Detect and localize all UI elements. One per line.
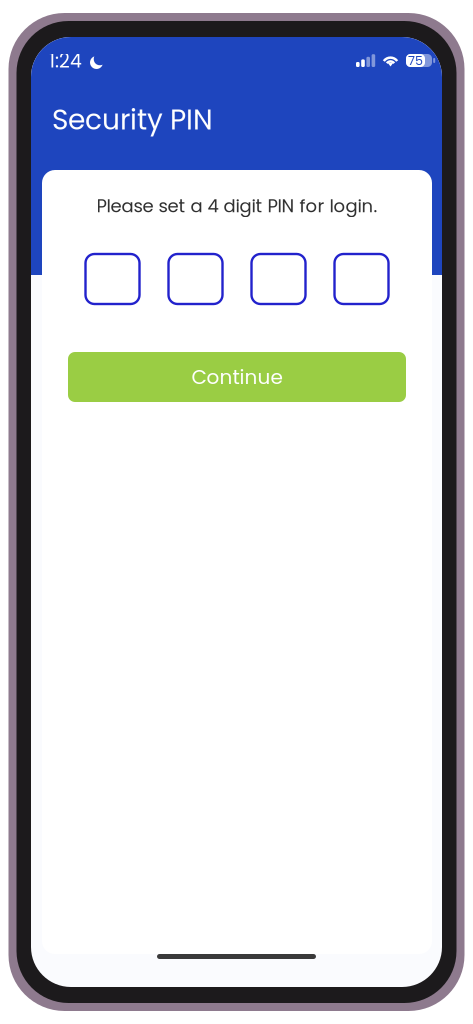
staticText: Security PIN xyxy=(52,100,213,139)
staticText: Please set a 4 digit PIN for login. xyxy=(96,193,377,219)
staticText: 1:24 xyxy=(49,48,82,74)
staticText: Continue xyxy=(191,363,282,391)
staticText: 75 xyxy=(408,52,423,69)
button[interactable]: Continue xyxy=(68,352,406,402)
